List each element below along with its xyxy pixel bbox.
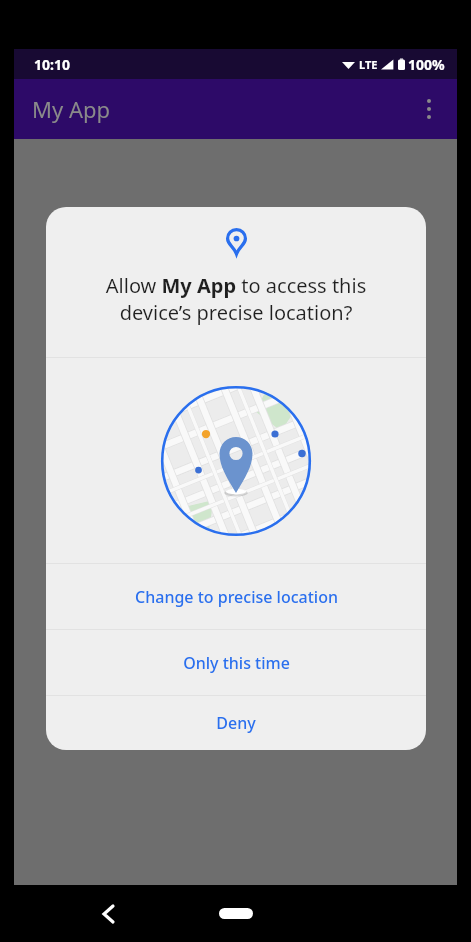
button[interactable]: Only this time: [46, 630, 426, 695]
button[interactable]: Back: [90, 896, 126, 932]
staticText: 100%: [408, 55, 445, 74]
button[interactable]: Change to precise location: [46, 564, 426, 629]
staticText: 10:10: [34, 55, 70, 74]
staticText: My App: [32, 94, 111, 124]
staticText: Change to precise location: [135, 586, 338, 608]
staticText: Only this time: [183, 652, 290, 674]
staticText: Allow My App to access this device’s pre…: [68, 272, 404, 326]
button[interactable]: Home: [219, 908, 253, 919]
staticText: Deny: [216, 712, 256, 734]
button[interactable]: More options: [409, 89, 449, 129]
staticText: LTE: [359, 57, 378, 72]
button[interactable]: Deny: [46, 696, 426, 750]
